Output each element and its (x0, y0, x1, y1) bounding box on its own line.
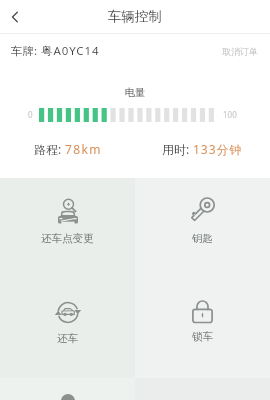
staticText: 78km (65, 141, 102, 157)
staticText: 车辆控制 (108, 8, 162, 25)
button[interactable]: 钥匙 (135, 178, 270, 278)
staticText: 100 (223, 109, 237, 120)
button[interactable] (0, 378, 135, 400)
staticText: 钥匙 (192, 232, 213, 245)
staticText: 锁车 (192, 330, 213, 343)
button[interactable]: 还车 (0, 278, 135, 378)
staticText: 电量 (0, 86, 270, 99)
staticText: 还车 (57, 332, 78, 345)
button[interactable]: 还车点变更 (0, 178, 135, 278)
staticText: 粤A0YC14 (41, 43, 100, 59)
staticText: 用时: (162, 141, 193, 157)
staticText: 还车点变更 (41, 232, 94, 245)
button[interactable]: Back (0, 2, 30, 32)
staticText: 0 (28, 109, 33, 120)
staticText: 车牌: (11, 43, 41, 59)
button[interactable]: 取消订单 (222, 46, 258, 57)
staticText: 133分钟 (193, 141, 243, 157)
staticText: 路程: (34, 141, 65, 157)
button[interactable]: 锁车 (135, 278, 270, 378)
